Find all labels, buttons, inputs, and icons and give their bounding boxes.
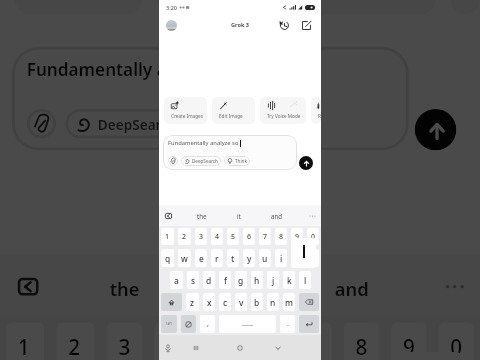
button[interactable]: 5: [227, 228, 239, 245]
button[interactable]: Voice input: [162, 342, 173, 353]
button[interactable]: DeepSearch: [181, 156, 221, 166]
button[interactable]: j: [267, 271, 279, 289]
button[interactable]: 8: [344, 322, 379, 360]
button[interactable]: q: [161, 249, 174, 267]
button[interactable]: y: [243, 249, 255, 267]
button[interactable]: it: [234, 210, 244, 222]
staticText: Research: [318, 113, 319, 119]
button[interactable]: 9: [291, 228, 303, 245]
button[interactable]: Think: [196, 109, 276, 138]
button[interactable]: c: [219, 293, 231, 311]
button[interactable]: New chat: [299, 18, 314, 33]
button[interactable]: 1: [6, 322, 44, 360]
button[interactable]: 0: [438, 322, 474, 360]
button[interactable]: b: [251, 293, 263, 311]
staticText: 9: [403, 334, 418, 360]
button[interactable]: Think: [224, 156, 250, 166]
button[interactable]: Expand toolbar: [12, 272, 41, 301]
button[interactable]: 4: [154, 322, 190, 360]
staticText: d: [206, 275, 212, 286]
button[interactable]: the: [101, 269, 151, 304]
button[interactable]: u: [259, 249, 271, 267]
button[interactable]: 2: [178, 228, 191, 245]
button[interactable]: i: [275, 249, 287, 267]
button[interactable]: Send: [415, 109, 456, 150]
button[interactable]: [27, 109, 56, 138]
button[interactable]: [219, 315, 276, 333]
button[interactable]: DeepSearch: [65, 109, 187, 138]
button[interactable]: 6: [249, 322, 284, 360]
button[interactable]: 7: [259, 228, 271, 245]
button[interactable]: x: [203, 293, 215, 311]
staticText: z: [190, 297, 195, 308]
button[interactable]: Edit Image: [212, 97, 255, 124]
button[interactable]: Profile: [166, 20, 177, 31]
button[interactable]: [168, 156, 178, 166]
button[interactable]: the: [194, 210, 210, 222]
button[interactable]: Backspace: [299, 293, 319, 311]
button[interactable]: l: [299, 271, 311, 289]
button[interactable]: s: [187, 271, 199, 289]
button[interactable]: h: [251, 271, 263, 289]
button[interactable]: Emoji: [181, 315, 196, 333]
button[interactable]: it: [222, 269, 255, 304]
staticText: 2: [68, 334, 83, 360]
button[interactable]: w: [178, 249, 191, 267]
button[interactable]: 0: [307, 228, 319, 245]
button[interactable]: More suggestions: [438, 272, 468, 301]
button[interactable]: 5: [201, 322, 237, 360]
button[interactable]: and: [326, 269, 379, 304]
button[interactable]: Try Voice Mode: [260, 97, 306, 124]
button[interactable]: f: [219, 271, 231, 289]
button[interactable]: v: [235, 293, 247, 311]
button[interactable]: Expand toolbar: [163, 211, 173, 221]
button[interactable]: 4: [211, 228, 223, 245]
button[interactable]: Try Voice Mode: [299, 0, 436, 14]
button[interactable]: Create Images: [164, 97, 207, 124]
button[interactable]: n: [267, 293, 279, 311]
button[interactable]: g: [235, 271, 247, 289]
button[interactable]: 6: [243, 228, 255, 245]
button[interactable]: z: [186, 293, 199, 311]
button[interactable]: Send: [299, 156, 313, 170]
button[interactable]: and: [268, 210, 286, 222]
button[interactable]: Research: [311, 97, 321, 124]
button[interactable]: Recent apps: [190, 342, 202, 354]
button[interactable]: a: [170, 271, 183, 289]
staticText: .: [287, 319, 289, 329]
staticText: Think: [235, 158, 247, 164]
button[interactable]: r: [211, 249, 223, 267]
button[interactable]: Home: [234, 342, 246, 354]
button[interactable]: ,: [200, 315, 215, 333]
button[interactable]: k: [283, 271, 295, 289]
button[interactable]: .: [280, 315, 295, 333]
button[interactable]: 7: [296, 322, 332, 360]
staticText: a: [174, 275, 179, 286]
button[interactable]: Hide keyboard: [272, 342, 284, 354]
button[interactable]: d: [203, 271, 215, 289]
button[interactable]: t: [227, 249, 239, 267]
button[interactable]: 3: [107, 322, 142, 360]
button[interactable]: 9: [391, 322, 427, 360]
button[interactable]: m: [283, 293, 295, 311]
button[interactable]: e: [195, 249, 207, 267]
button[interactable]: History: [277, 18, 292, 33]
button[interactable]: 8: [275, 228, 287, 245]
button[interactable]: Edit Image: [157, 0, 284, 14]
button[interactable]: Symbols: [161, 315, 177, 333]
staticText: 0: [311, 232, 316, 242]
button[interactable]: Enter: [299, 315, 319, 333]
button[interactable]: 1: [161, 228, 174, 245]
button[interactable]: 2: [56, 322, 95, 360]
staticText: 3: [118, 334, 133, 360]
button[interactable]: 3: [195, 228, 207, 245]
button[interactable]: More suggestions: [307, 211, 317, 221]
button[interactable]: Shift: [161, 293, 182, 311]
